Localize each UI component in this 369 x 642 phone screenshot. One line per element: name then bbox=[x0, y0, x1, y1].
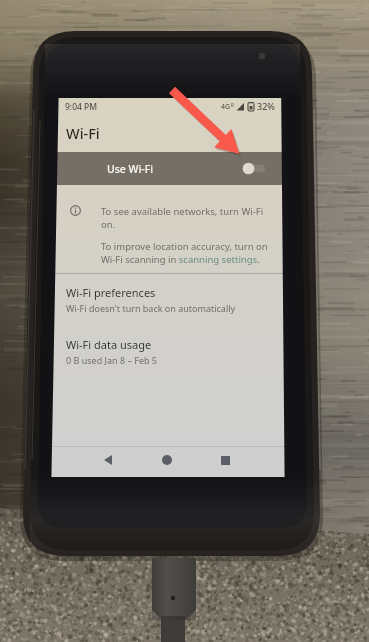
button[interactable]: Wi-Fi data usage bbox=[51, 335, 285, 377]
button[interactable]: Home bbox=[154, 447, 180, 473]
staticText: R bbox=[231, 102, 234, 108]
staticText: To see available networks, turn Wi-Fi on… bbox=[101, 205, 273, 231]
staticText: To improve location accuracy, turn on Wi… bbox=[101, 240, 273, 266]
staticText: Wi-Fi preferences bbox=[66, 285, 156, 300]
staticText: 9:04 PM bbox=[65, 101, 98, 113]
staticText: 32% bbox=[257, 100, 275, 112]
staticText: Use Wi-Fi bbox=[107, 162, 154, 176]
staticText: Wi-Fi data usage bbox=[66, 337, 152, 352]
staticText: 0 B used Jan 8 – Feb 5 bbox=[66, 354, 158, 366]
staticText: Wi-Fi bbox=[66, 123, 100, 143]
button[interactable]: Wi-Fi preferences bbox=[51, 283, 285, 325]
button[interactable]: Recents bbox=[212, 447, 238, 473]
button[interactable]: Use Wi-Fi bbox=[51, 152, 285, 185]
staticText: 4G bbox=[221, 102, 231, 112]
button[interactable]: Back bbox=[95, 447, 121, 473]
staticText: Wi-Fi doesn't turn back on automatically bbox=[66, 302, 236, 314]
